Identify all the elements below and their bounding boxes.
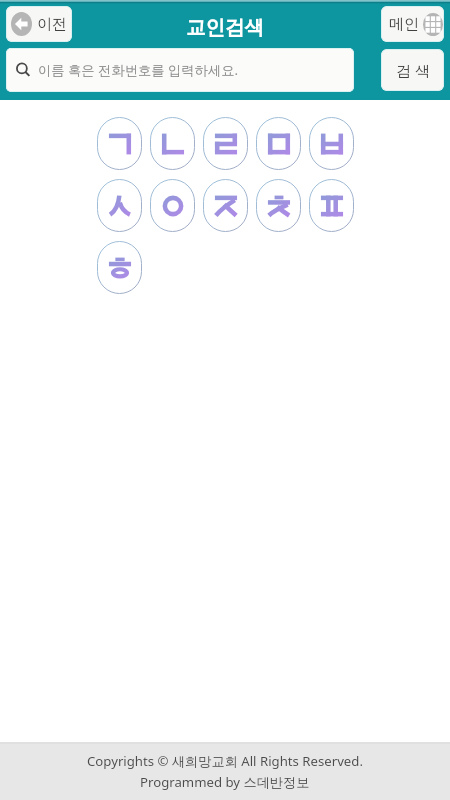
staticText: Copyrights © 새희망교회 All Rights Reserved. — [87, 752, 363, 770]
staticText: Programmed by 스데반정보 — [140, 773, 310, 791]
button[interactable]: Search — [6, 48, 354, 92]
button[interactable]: Back — [6, 6, 72, 42]
other: Search — [15, 62, 31, 78]
button[interactable] — [97, 179, 142, 232]
button[interactable] — [309, 179, 354, 232]
button[interactable] — [150, 117, 195, 170]
other: Main menu — [423, 13, 443, 36]
button[interactable] — [150, 179, 195, 232]
button[interactable] — [97, 241, 142, 294]
button[interactable] — [309, 117, 354, 170]
staticText: 이름 혹은 전화번호를 입력하세요. — [38, 61, 239, 79]
button[interactable] — [256, 117, 301, 170]
other: Back — [11, 12, 32, 36]
staticText: 메인 — [389, 15, 419, 34]
button[interactable]: 검 색 — [381, 49, 444, 91]
button[interactable]: 메인 — [381, 6, 444, 42]
button[interactable] — [203, 117, 248, 170]
button[interactable] — [256, 179, 301, 232]
staticText: 교인검색 — [186, 15, 264, 40]
button[interactable] — [203, 179, 248, 232]
staticText: 검 색 — [396, 60, 430, 80]
staticText: 이전 — [37, 15, 67, 34]
button[interactable] — [97, 117, 142, 170]
